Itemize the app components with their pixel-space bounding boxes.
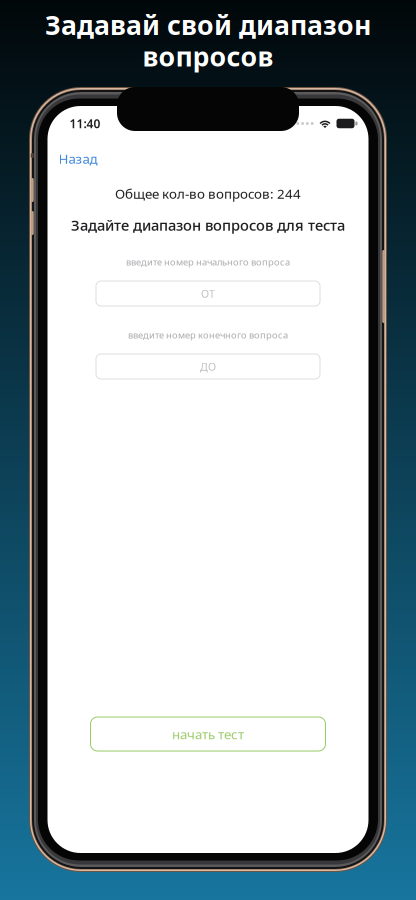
staticText: Назад [58, 150, 97, 167]
staticText: 11:40 [69, 115, 100, 131]
staticText: ОТ [201, 286, 215, 301]
staticText: введите номер конечного вопроса [128, 329, 288, 341]
staticText: вопросов [142, 38, 273, 74]
staticText: введите номер начального вопроса [126, 256, 290, 268]
staticText: ДО [200, 359, 216, 374]
staticText: Задавай свой диапазон [45, 7, 371, 42]
button[interactable]: ДО [96, 354, 320, 379]
staticText: Задайте диапазон вопросов для теста [71, 215, 345, 235]
button[interactable]: начать тест [90, 717, 325, 751]
button[interactable]: Назад [48, 146, 107, 171]
button[interactable]: ОТ [96, 281, 320, 306]
staticText: Общее кол-во вопросов: 244 [115, 185, 301, 202]
staticText: начать тест [172, 725, 244, 743]
